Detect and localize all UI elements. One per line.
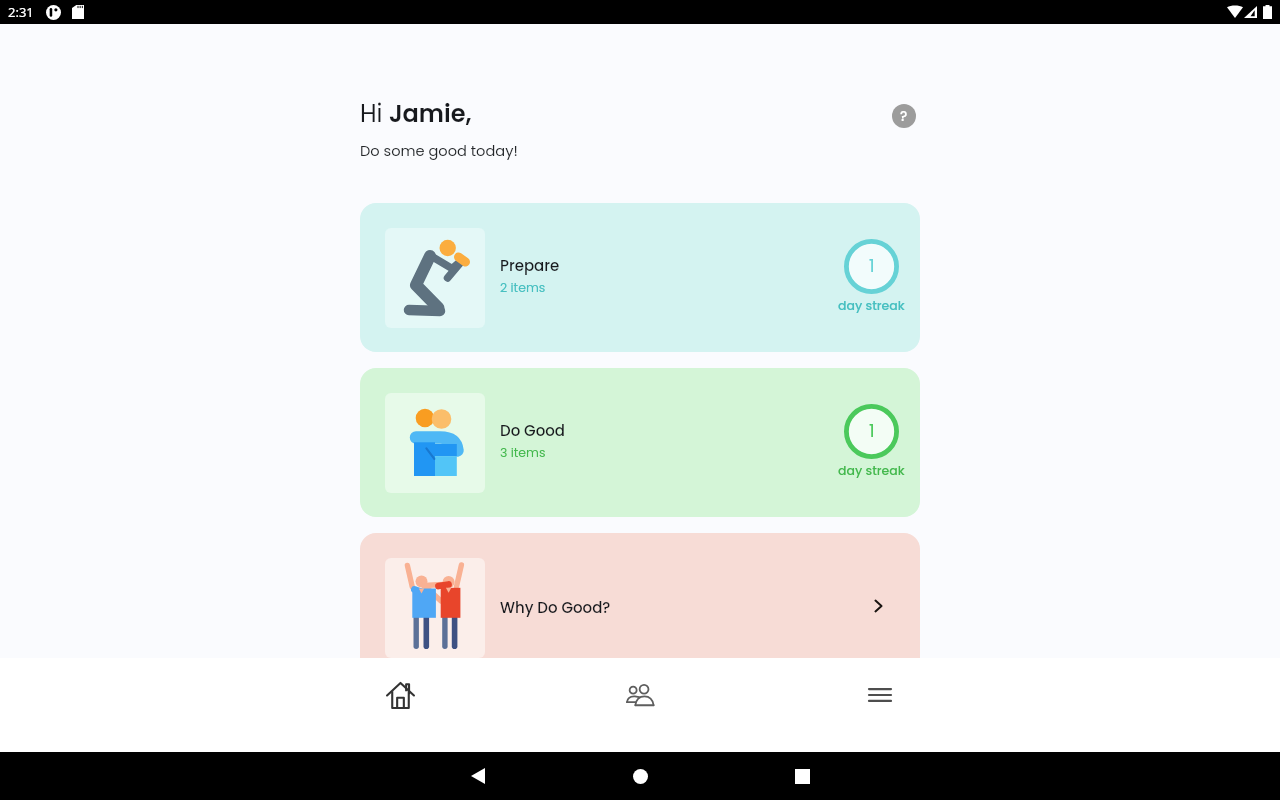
staticText: Do Good [500,420,566,441]
staticText: Hi Jamie, [360,97,472,131]
button[interactable]: Home [280,663,520,727]
button[interactable]: Do Good [360,368,920,517]
button[interactable]: Recents [721,752,884,800]
staticText: 2:31 [8,3,34,21]
button[interactable]: Home [559,752,721,800]
staticText: day streak [838,297,905,314]
staticText: 1 [869,419,875,444]
staticText: 3 items [500,444,546,461]
button[interactable]: Why Do Good? [360,533,920,658]
staticText: Do some good today! [360,141,518,161]
staticText: 1 [869,254,875,279]
staticText: ? [900,107,908,126]
staticText: 2 items [500,279,546,296]
button[interactable]: Menu [760,663,1000,727]
staticText: Why Do Good? [500,597,611,618]
button[interactable]: Back [396,752,559,800]
button[interactable]: Friends [520,663,760,727]
button[interactable]: Help [892,104,916,128]
staticText: day streak [838,462,905,479]
button[interactable]: Prepare [360,203,920,352]
staticText: Prepare [500,255,560,276]
